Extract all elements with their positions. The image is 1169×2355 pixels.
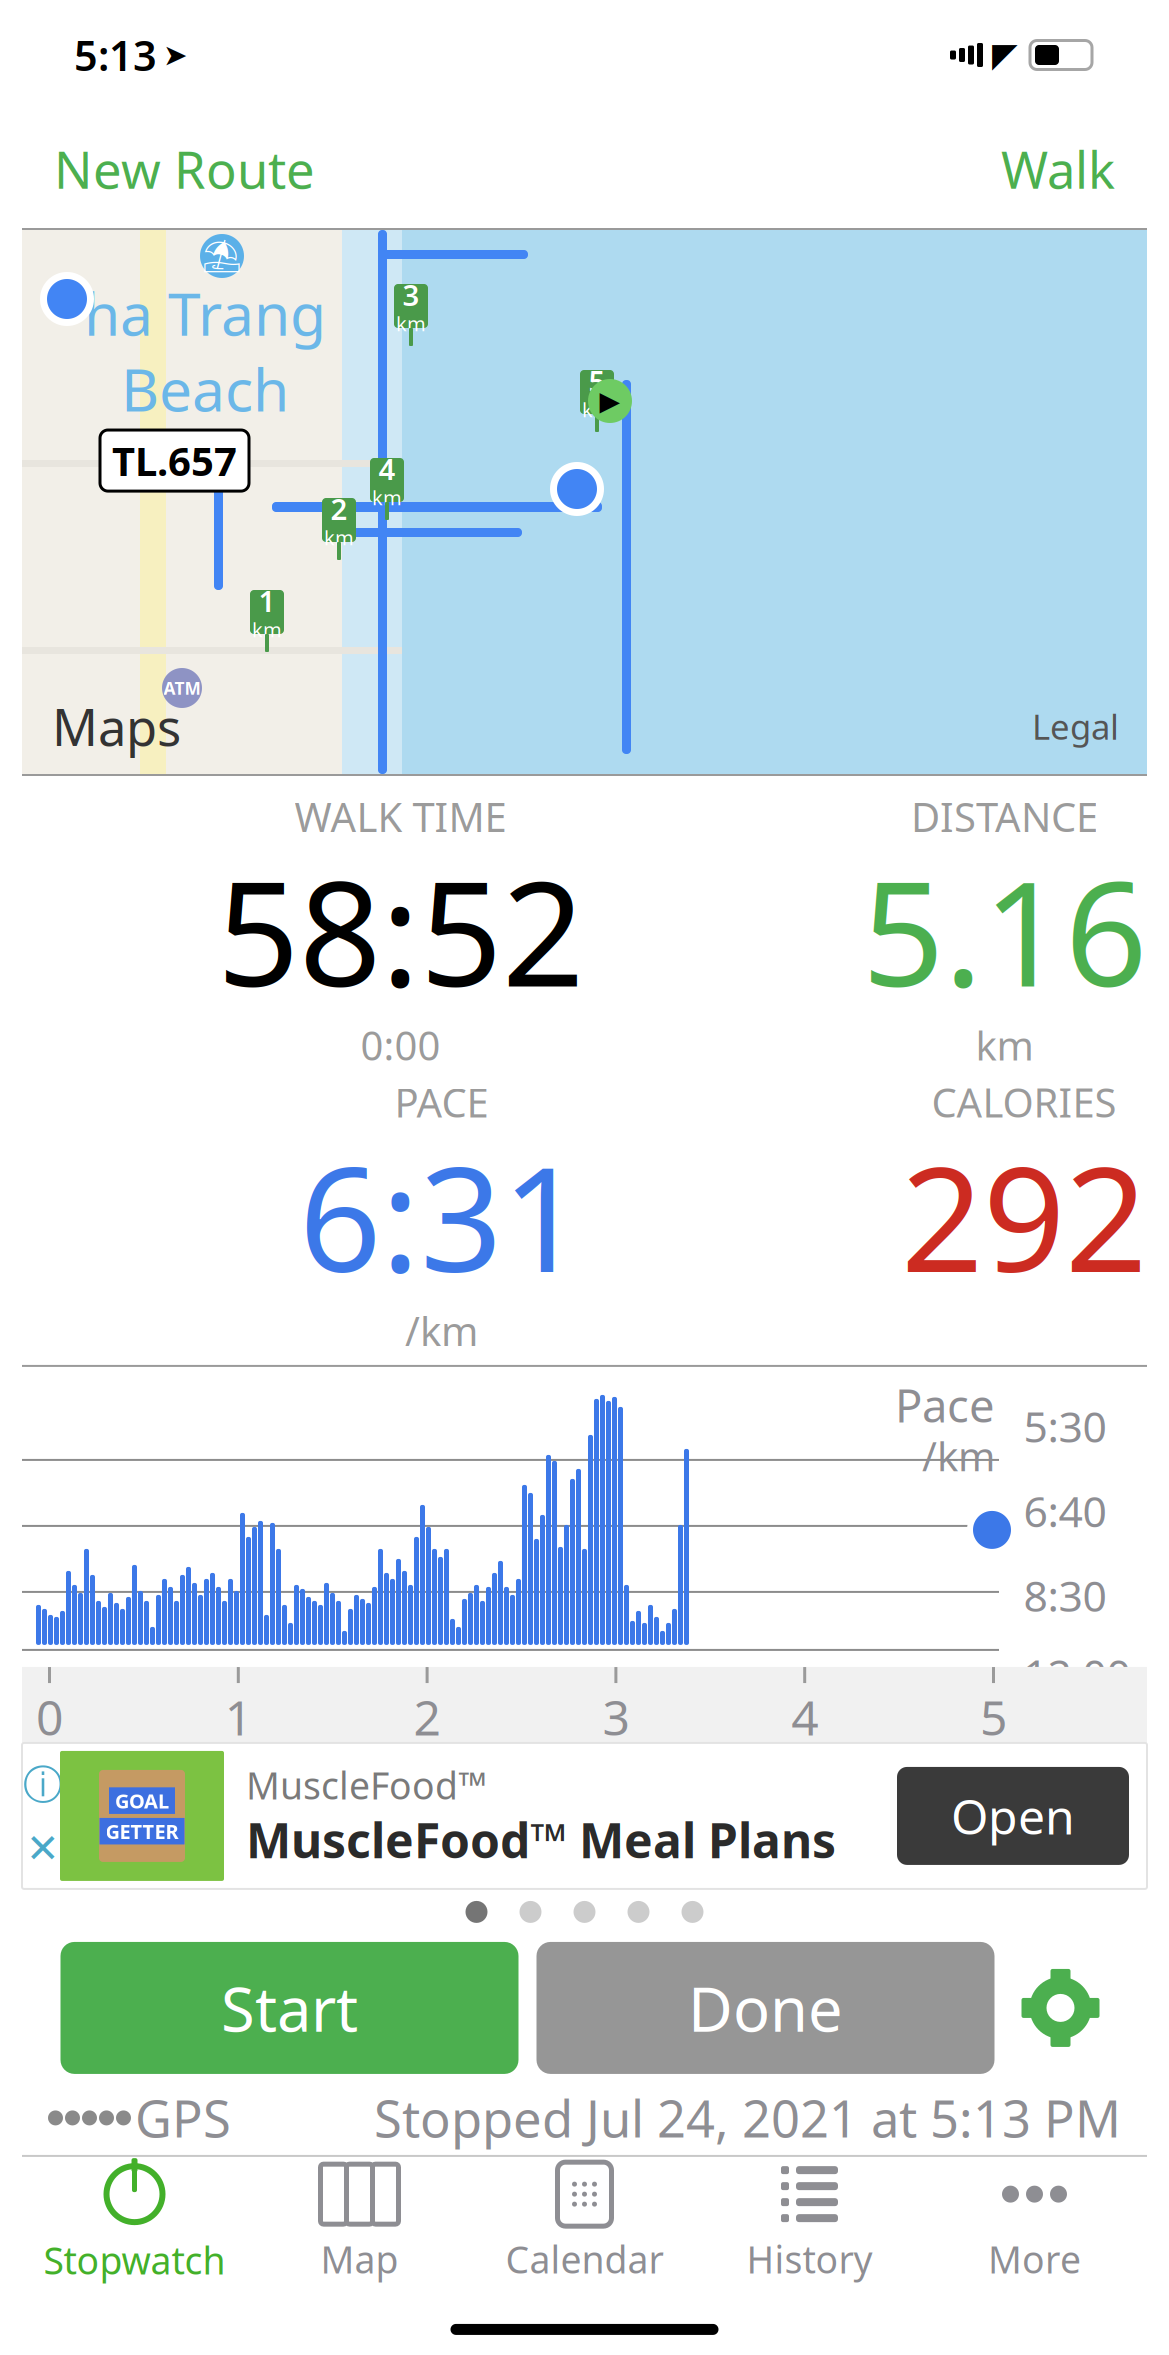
staticText: CALORIES [931, 1075, 1116, 1129]
staticText: Stopwatch [43, 2235, 225, 2285]
staticText: km [396, 310, 426, 337]
staticText: Calendar [505, 2234, 663, 2284]
staticText: 4 [791, 1685, 818, 1749]
staticText: km [324, 524, 354, 551]
staticText: 5 [980, 1685, 1007, 1749]
staticText: WALK TIME [294, 790, 506, 843]
staticText: ha Trang [84, 274, 326, 352]
staticText: 5:13 [74, 28, 157, 82]
button[interactable]: ⓘ [22, 1743, 1147, 1889]
staticText: TL.657 [112, 434, 237, 487]
staticText: Stopped Jul 24, 2021 at 5:13 PM [374, 2084, 1121, 2152]
staticText: km [975, 1018, 1033, 1071]
staticText: MuscleFood™ Meal Plans [246, 1808, 836, 1871]
staticText: Map [320, 2234, 398, 2284]
staticText: 1 [258, 581, 275, 620]
staticText: 8:30 [1023, 1567, 1106, 1624]
staticText: Legal [1032, 703, 1119, 749]
staticText: 0:00 [360, 1018, 440, 1071]
button[interactable]: Map [247, 2159, 472, 2287]
staticText: More [988, 2234, 1081, 2284]
staticText: Start [221, 1967, 358, 2049]
staticText: ◤ [992, 36, 1018, 74]
staticText: Open [951, 1784, 1075, 1848]
staticText: /km [405, 1304, 478, 1357]
staticText: Pace [895, 1375, 995, 1435]
staticText: km [582, 396, 612, 423]
staticText: ⓘ [23, 1761, 63, 1810]
staticText: 58:52 [217, 835, 584, 1026]
staticText: 6:40 [1023, 1482, 1106, 1539]
staticText: 4 [378, 449, 395, 488]
button[interactable]: New Route [44, 121, 325, 217]
staticText: km [252, 616, 282, 643]
button[interactable]: Start [60, 1942, 518, 2074]
staticText: Walk [1001, 135, 1115, 203]
staticText: GETTER [105, 1818, 178, 1844]
staticText: Maps [52, 693, 181, 760]
staticText: Done [688, 1967, 843, 2049]
staticText: 12:00 [1023, 1646, 1130, 1702]
staticText: 2 [330, 489, 347, 528]
staticText: ATM [163, 676, 200, 699]
staticText: 1 [225, 1685, 252, 1749]
button[interactable]: Walk [991, 121, 1125, 217]
button[interactable]: Done [536, 1942, 994, 2074]
staticText: 5.16 [862, 835, 1147, 1026]
staticText: New Route [54, 135, 315, 203]
staticText: ⛱ [201, 238, 242, 274]
staticText: ✕ [26, 1826, 60, 1871]
button[interactable] [1012, 1960, 1108, 2056]
staticText: History [746, 2234, 872, 2284]
button[interactable]: Calendar [472, 2159, 697, 2287]
staticText: 5:30 [1023, 1398, 1106, 1454]
staticText: km [372, 484, 402, 511]
staticText: 0 [36, 1685, 63, 1749]
staticText: 3 [402, 275, 419, 314]
staticText: Beach [121, 350, 289, 428]
staticText: ➤ [163, 38, 188, 72]
staticText: PACE [394, 1075, 488, 1129]
staticText: MuscleFood™ [246, 1760, 487, 1810]
staticText: 2 [414, 1685, 441, 1749]
staticText: 3 [602, 1685, 629, 1749]
staticText: 292 [901, 1121, 1147, 1312]
button[interactable]: History [697, 2159, 922, 2287]
staticText: DISTANCE [911, 790, 1098, 843]
staticText: 5 [588, 361, 605, 400]
button[interactable]: More [922, 2159, 1147, 2287]
staticText: /km [922, 1429, 995, 1482]
staticText: ▶ [599, 386, 620, 416]
staticText: 6:31 [299, 1121, 584, 1312]
staticText: GOAL [115, 1787, 169, 1814]
staticText: GPS [135, 2084, 231, 2152]
button[interactable]: Stopwatch [22, 2159, 247, 2287]
